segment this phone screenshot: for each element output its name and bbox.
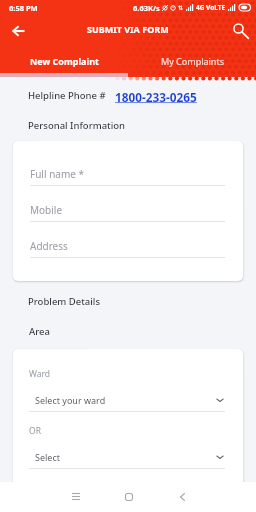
button[interactable]: Home (116, 484, 141, 509)
button[interactable]: Select (29, 451, 225, 469)
staticText: My Complaints (161, 55, 224, 67)
staticText: 6:58 PM (9, 3, 38, 13)
staticText: Select your ward (35, 394, 106, 406)
button[interactable]: Recent apps (63, 484, 88, 509)
staticText: 1800-233-0265 (115, 89, 197, 105)
staticText: Helpline Phone # (28, 89, 109, 102)
staticText: Address (30, 239, 68, 253)
staticText: Problem Details (28, 295, 101, 308)
staticText: Ward (29, 368, 51, 380)
staticText: 4G VoLTE (196, 3, 226, 12)
button[interactable]: My Complaints (128, 47, 256, 77)
staticText: Full name * (30, 167, 85, 181)
staticText: ⇅ (178, 4, 184, 11)
staticText: Personal Information (28, 119, 126, 132)
button[interactable]: Back (7, 20, 29, 42)
staticText: OR (29, 425, 41, 437)
staticText: New Complaint (30, 55, 99, 67)
staticText: 6.63K/s (133, 3, 160, 13)
staticText: Area (29, 325, 50, 338)
staticText: Select (35, 451, 60, 463)
staticText: SUBMIT VIA FORM (87, 23, 169, 35)
button[interactable]: Search (229, 19, 253, 43)
button[interactable]: New Complaint (0, 47, 128, 77)
button[interactable]: Select your ward (29, 394, 225, 412)
button[interactable]: Back (170, 484, 195, 509)
staticText: Mobile (30, 203, 63, 217)
